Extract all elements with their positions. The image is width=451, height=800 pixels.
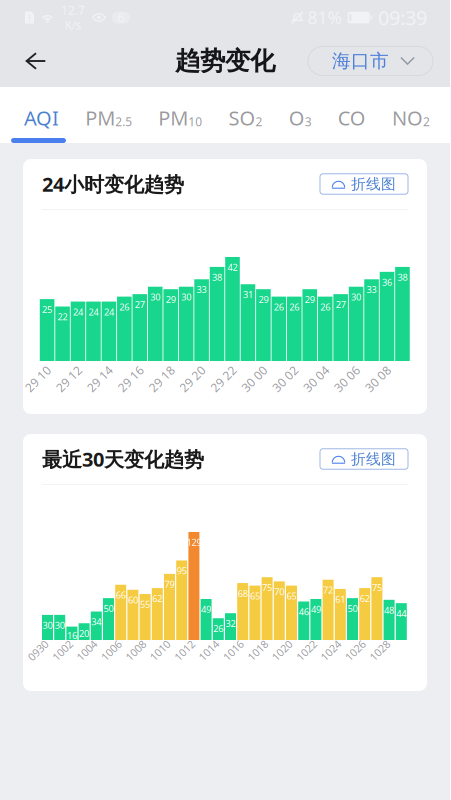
staticText: 65: [250, 590, 260, 602]
staticText: 29 22: [209, 357, 240, 373]
staticText: 27: [135, 298, 145, 310]
staticText: 0930: [28, 633, 52, 647]
staticText: 129: [186, 536, 201, 548]
staticText: CO: [338, 104, 366, 131]
staticText: 48: [384, 604, 394, 616]
staticText: 26: [289, 301, 299, 313]
staticText: 25: [42, 303, 52, 315]
staticText: 6: [117, 9, 124, 25]
button[interactable]: NO: [392, 87, 430, 143]
staticText: 30 00: [240, 357, 271, 373]
staticText: 75: [372, 581, 382, 594]
staticText: 26: [320, 301, 330, 313]
staticText: 最近30天变化趋势: [42, 446, 204, 472]
staticText: 1026: [345, 633, 369, 647]
staticText: 38: [212, 271, 222, 283]
staticText: 2: [255, 114, 262, 129]
button[interactable]: CO: [338, 87, 366, 143]
button[interactable]: O: [289, 87, 312, 143]
button[interactable]: AQI: [24, 87, 59, 143]
staticText: 2.5: [115, 114, 132, 129]
staticText: O: [289, 104, 305, 131]
staticText: 29: [166, 293, 176, 306]
button[interactable]: SO: [228, 87, 262, 143]
staticText: 44: [396, 607, 406, 620]
staticText: 26: [274, 301, 284, 313]
staticText: 1004: [76, 633, 100, 647]
staticText: 12.7: [61, 2, 85, 18]
staticText: 61: [335, 593, 345, 605]
staticText: 1028: [369, 633, 393, 647]
staticText: 24小时变化趋势: [42, 171, 184, 197]
staticText: 30 04: [302, 357, 333, 373]
staticText: 22: [57, 310, 67, 323]
staticText: 29 18: [147, 357, 178, 373]
staticText: 16: [67, 629, 77, 641]
staticText: 30: [42, 619, 52, 631]
staticText: 29: [305, 293, 315, 306]
staticText: 1012: [174, 633, 198, 647]
staticText: 29: [258, 293, 268, 306]
button[interactable]: 折线图: [320, 174, 408, 194]
staticText: 29 12: [54, 357, 85, 373]
staticText: 30 06: [333, 357, 364, 373]
staticText: 1010: [150, 633, 174, 647]
staticText: 50: [347, 602, 357, 614]
staticText: 29 14: [85, 357, 116, 373]
staticText: 72: [323, 584, 333, 596]
staticText: 1016: [223, 633, 247, 647]
staticText: 26: [119, 301, 129, 313]
staticText: 36: [382, 276, 392, 288]
staticText: 29 20: [178, 357, 209, 373]
staticText: 70: [274, 585, 284, 598]
staticText: 95: [177, 564, 187, 577]
staticText: 30 08: [363, 357, 394, 373]
staticText: 30: [351, 291, 361, 303]
staticText: 20: [79, 627, 89, 640]
staticText: 55: [140, 598, 150, 610]
staticText: 34: [91, 615, 101, 628]
staticText: K/s: [64, 17, 81, 33]
staticText: 49: [201, 603, 211, 615]
staticText: 3: [305, 114, 312, 129]
staticText: 24: [88, 306, 98, 318]
staticText: 31: [243, 288, 253, 301]
staticText: 27: [336, 298, 346, 310]
button[interactable]: PM: [85, 87, 132, 143]
button[interactable]: 折线图: [320, 449, 408, 469]
staticText: 30: [181, 291, 191, 303]
staticText: 38: [397, 271, 407, 283]
staticText: 30: [150, 291, 160, 303]
staticText: 62: [360, 592, 370, 604]
staticText: 32: [225, 617, 235, 630]
staticText: NO: [392, 104, 423, 131]
button[interactable]: 海口市: [308, 46, 450, 75]
staticText: 1002: [52, 633, 76, 647]
staticText: 50: [103, 602, 113, 614]
staticText: SO: [228, 104, 255, 131]
staticText: 1014: [198, 633, 222, 647]
staticText: 29 10: [24, 357, 55, 373]
staticText: 折线图: [351, 175, 396, 193]
staticText: 24: [73, 306, 83, 318]
staticText: 30: [55, 619, 65, 631]
staticText: 60: [128, 594, 138, 606]
staticText: 66: [116, 589, 126, 601]
staticText: 1008: [125, 633, 149, 647]
staticText: 24: [104, 306, 114, 318]
staticText: 68: [238, 587, 248, 599]
button[interactable]: 返回: [0, 35, 60, 87]
staticText: 30 02: [271, 357, 302, 373]
staticText: 65: [286, 590, 296, 602]
staticText: 10: [188, 114, 202, 129]
staticText: 趋势变化: [175, 45, 275, 76]
staticText: 1020: [272, 633, 296, 647]
button[interactable]: PM: [158, 87, 202, 143]
staticText: 2: [423, 114, 430, 129]
staticText: 折线图: [351, 450, 396, 468]
staticText: 62: [152, 592, 162, 604]
staticText: 75: [262, 581, 272, 594]
staticText: 1024: [320, 633, 344, 647]
staticText: 33: [366, 283, 376, 296]
staticText: 81%: [307, 6, 341, 29]
